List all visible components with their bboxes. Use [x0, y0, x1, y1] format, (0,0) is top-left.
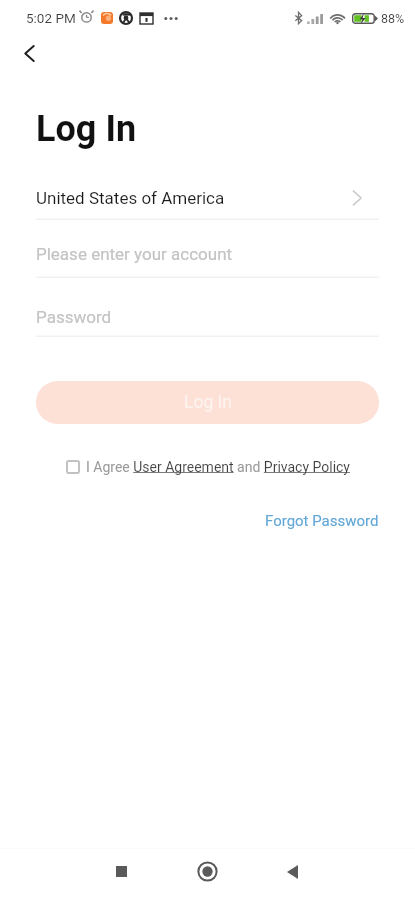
- staticText: 5:02 PM: [26, 10, 76, 26]
- staticText: Log In: [36, 108, 137, 150]
- button[interactable]: Recents: [98, 848, 145, 895]
- staticText: Password: [36, 307, 112, 327]
- staticText: I Agree User Agreement and Privacy Polic…: [86, 459, 350, 475]
- staticText: United States of America: [36, 188, 225, 208]
- button[interactable]: Log In: [36, 381, 379, 424]
- button[interactable]: Back: [11, 35, 47, 71]
- button[interactable]: Please enter your account: [36, 240, 379, 268]
- button[interactable]: Password: [36, 303, 379, 331]
- staticText: Log In: [184, 392, 232, 413]
- button[interactable]: Home: [184, 848, 231, 895]
- button[interactable]: United States of America: [36, 184, 379, 212]
- staticText: Forgot Password: [265, 512, 379, 530]
- button[interactable]: Agree checkbox: [66, 460, 80, 474]
- staticText: Please enter your account: [36, 244, 233, 264]
- button[interactable]: Forgot Password: [265, 512, 379, 530]
- staticText: 88%: [381, 11, 405, 26]
- button[interactable]: Back: [269, 848, 316, 895]
